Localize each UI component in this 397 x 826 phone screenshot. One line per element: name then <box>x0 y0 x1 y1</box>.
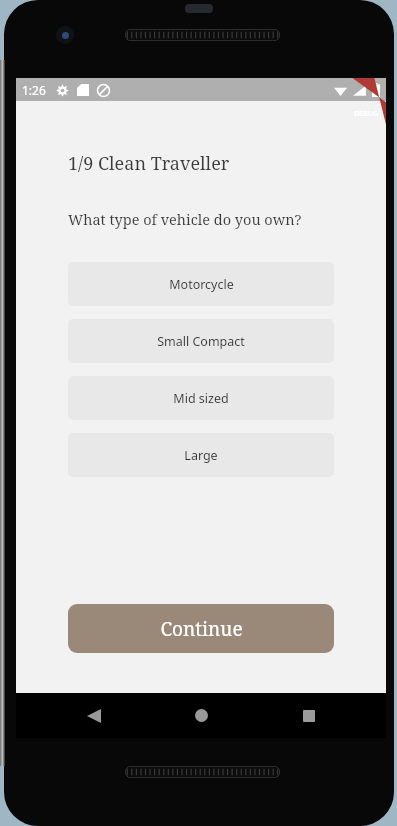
button[interactable]: Small Compact <box>68 319 334 363</box>
button[interactable]: Home <box>171 693 231 738</box>
button[interactable]: Recent apps <box>279 693 339 738</box>
staticText: Small Compact <box>157 333 245 350</box>
staticText: Motorcycle <box>169 276 234 293</box>
staticText: Large <box>184 447 218 464</box>
button[interactable]: Continue <box>68 604 334 653</box>
staticText: What type of vehicle do you own? <box>68 209 302 229</box>
staticText: DEBUG <box>354 109 379 119</box>
staticText: 1/9 Clean Traveller <box>68 151 230 176</box>
button[interactable]: Back <box>64 693 124 738</box>
staticText: 1:26 <box>22 82 46 98</box>
staticText: Continue <box>160 616 243 642</box>
button[interactable]: Large <box>68 433 334 477</box>
button[interactable]: Motorcycle <box>68 262 334 306</box>
staticText: Mid sized <box>173 390 229 407</box>
button[interactable]: Mid sized <box>68 376 334 420</box>
